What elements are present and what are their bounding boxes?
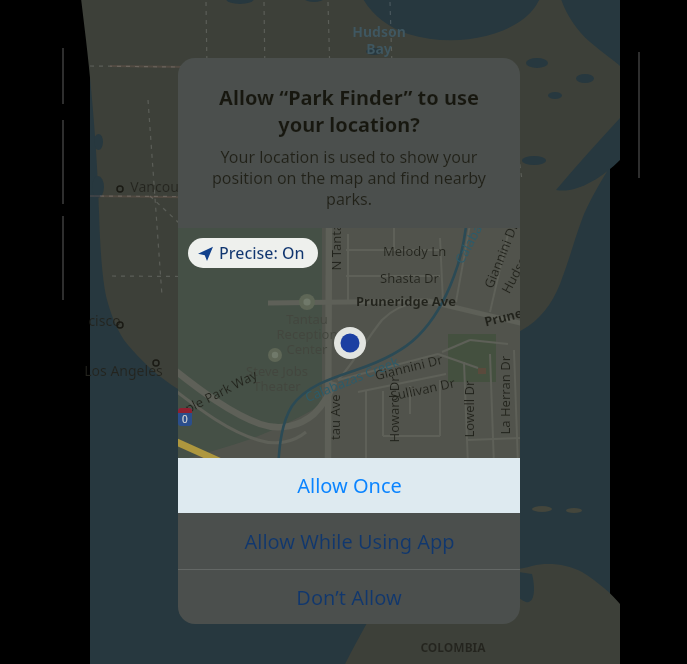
staticText: Lowell Dr: [459, 380, 477, 437]
staticText: 0: [182, 412, 188, 426]
staticText: Calabazas: [450, 228, 495, 267]
button[interactable]: Don’t Allow: [178, 570, 520, 624]
staticText: Precise: On: [219, 242, 305, 264]
staticText: Montréal: [453, 221, 513, 240]
staticText: Tantau Reception Center: [263, 310, 351, 358]
staticText: Allow “Park Finder” to use your location…: [202, 84, 496, 138]
staticText: Montclair D: [515, 363, 520, 434]
staticText: N Tantau A: [326, 228, 344, 270]
staticText: Pruneridge Ave: [356, 292, 456, 310]
staticText: New York: [451, 290, 513, 309]
staticText: Calabazas Creek: [302, 352, 402, 406]
staticText: Hudson: [497, 246, 520, 296]
staticText: Giannini Dr: [479, 228, 520, 291]
staticText: Allow Once: [297, 472, 402, 499]
button[interactable]: Allow Once: [178, 458, 520, 513]
staticText: Your location is used to show your posit…: [200, 146, 498, 210]
staticText: Don’t Allow: [296, 584, 402, 611]
staticText: Sullivan Dr: [389, 373, 457, 405]
staticText: Melody Ln: [383, 242, 447, 260]
staticText: COLOMBIA: [420, 639, 486, 655]
staticText: Howard Dr: [384, 375, 402, 442]
staticText: Los Angeles: [84, 361, 163, 380]
staticText: Vancouver: [130, 177, 200, 196]
staticText: Apple Park Way: [178, 365, 260, 425]
staticText: Shasta Dr: [380, 269, 439, 287]
staticText: ashington: [429, 313, 496, 332]
staticText: Allow While Using App: [244, 528, 455, 555]
button[interactable]: Allow While Using App: [178, 513, 520, 569]
button[interactable]: Precise: On: [198, 238, 305, 268]
staticText: Hudson Bay: [352, 22, 406, 58]
staticText: La Herran Dr: [495, 355, 513, 434]
staticText: tau Ave: [326, 394, 344, 440]
staticText: HAITI: [444, 504, 478, 520]
staticText: cisco: [88, 311, 121, 330]
staticText: nto: [424, 243, 447, 262]
staticText: Prune: [482, 303, 520, 330]
staticText: Giannini Dr: [373, 350, 445, 384]
staticText: Steve Jobs Theater: [234, 362, 320, 395]
